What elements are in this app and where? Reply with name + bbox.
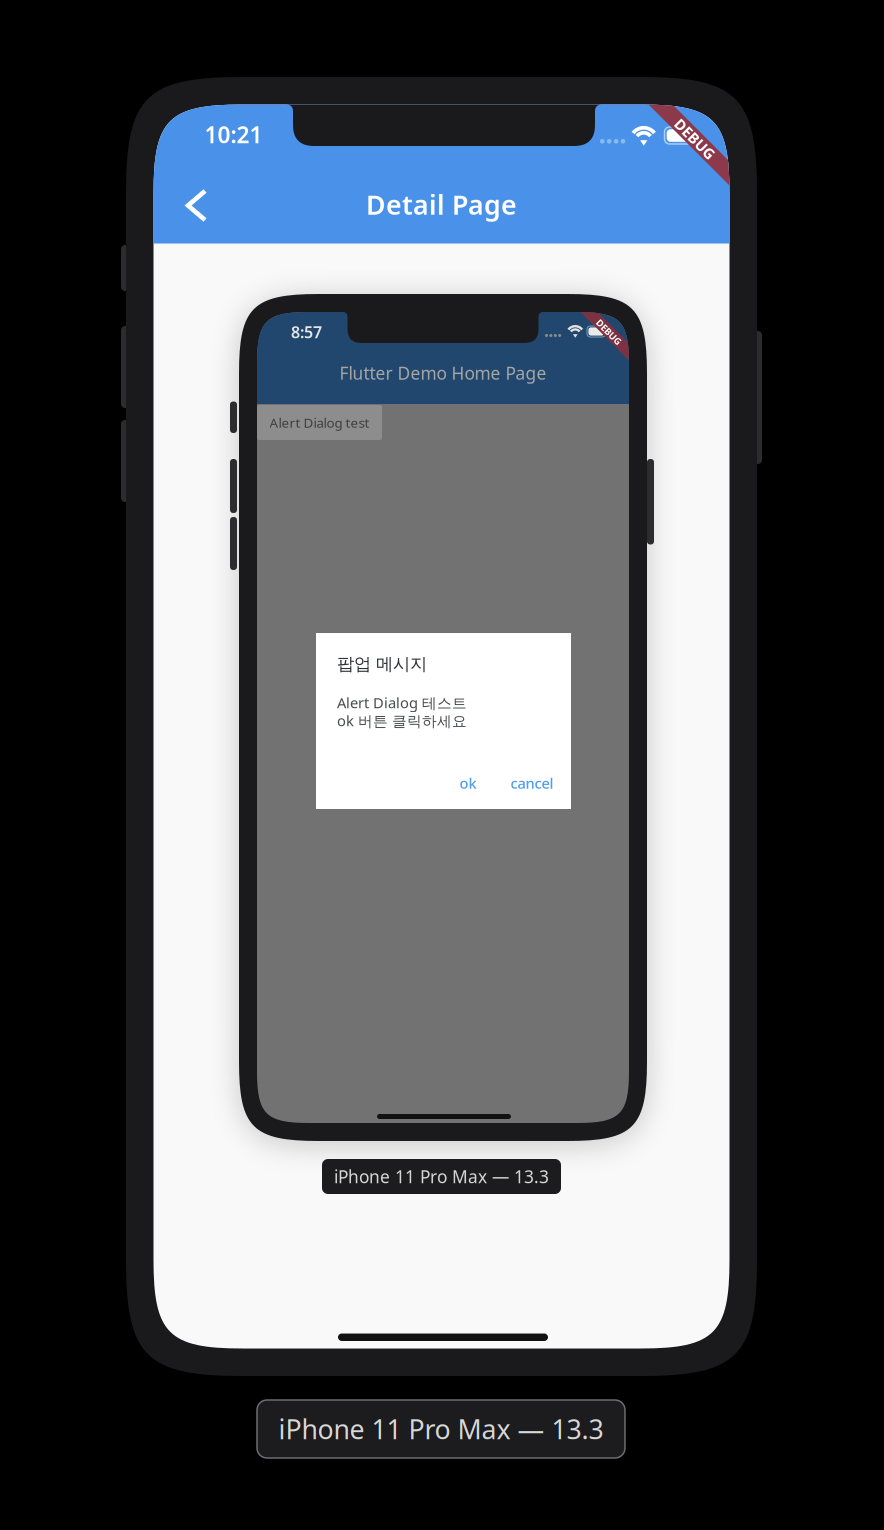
staticText: DEBUG <box>593 326 625 338</box>
staticText: DEBUG <box>669 129 720 149</box>
button[interactable]: Back <box>165 174 227 236</box>
button[interactable]: ok <box>450 770 486 796</box>
staticText: Detail Page <box>366 187 517 222</box>
staticText: cancel <box>510 773 553 793</box>
staticText: Alert Dialog test <box>269 414 369 431</box>
staticText: iPhone 11 Pro Max — 13.3 <box>334 1165 549 1188</box>
staticText: iPhone 11 Pro Max — 13.3 <box>278 1411 603 1447</box>
staticText: ok <box>459 773 476 793</box>
staticText: 팝업 메시지 <box>337 653 427 675</box>
staticText: Flutter Demo Home Page <box>339 361 546 384</box>
staticText: ok 버튼 클릭하세요 <box>337 711 467 730</box>
button[interactable]: cancel <box>504 770 560 796</box>
staticText: 10:21 <box>204 119 262 149</box>
staticText: 8:57 <box>291 321 322 343</box>
staticText: Alert Dialog 테스트 <box>337 693 467 712</box>
button[interactable]: Alert Dialog test <box>257 405 382 440</box>
